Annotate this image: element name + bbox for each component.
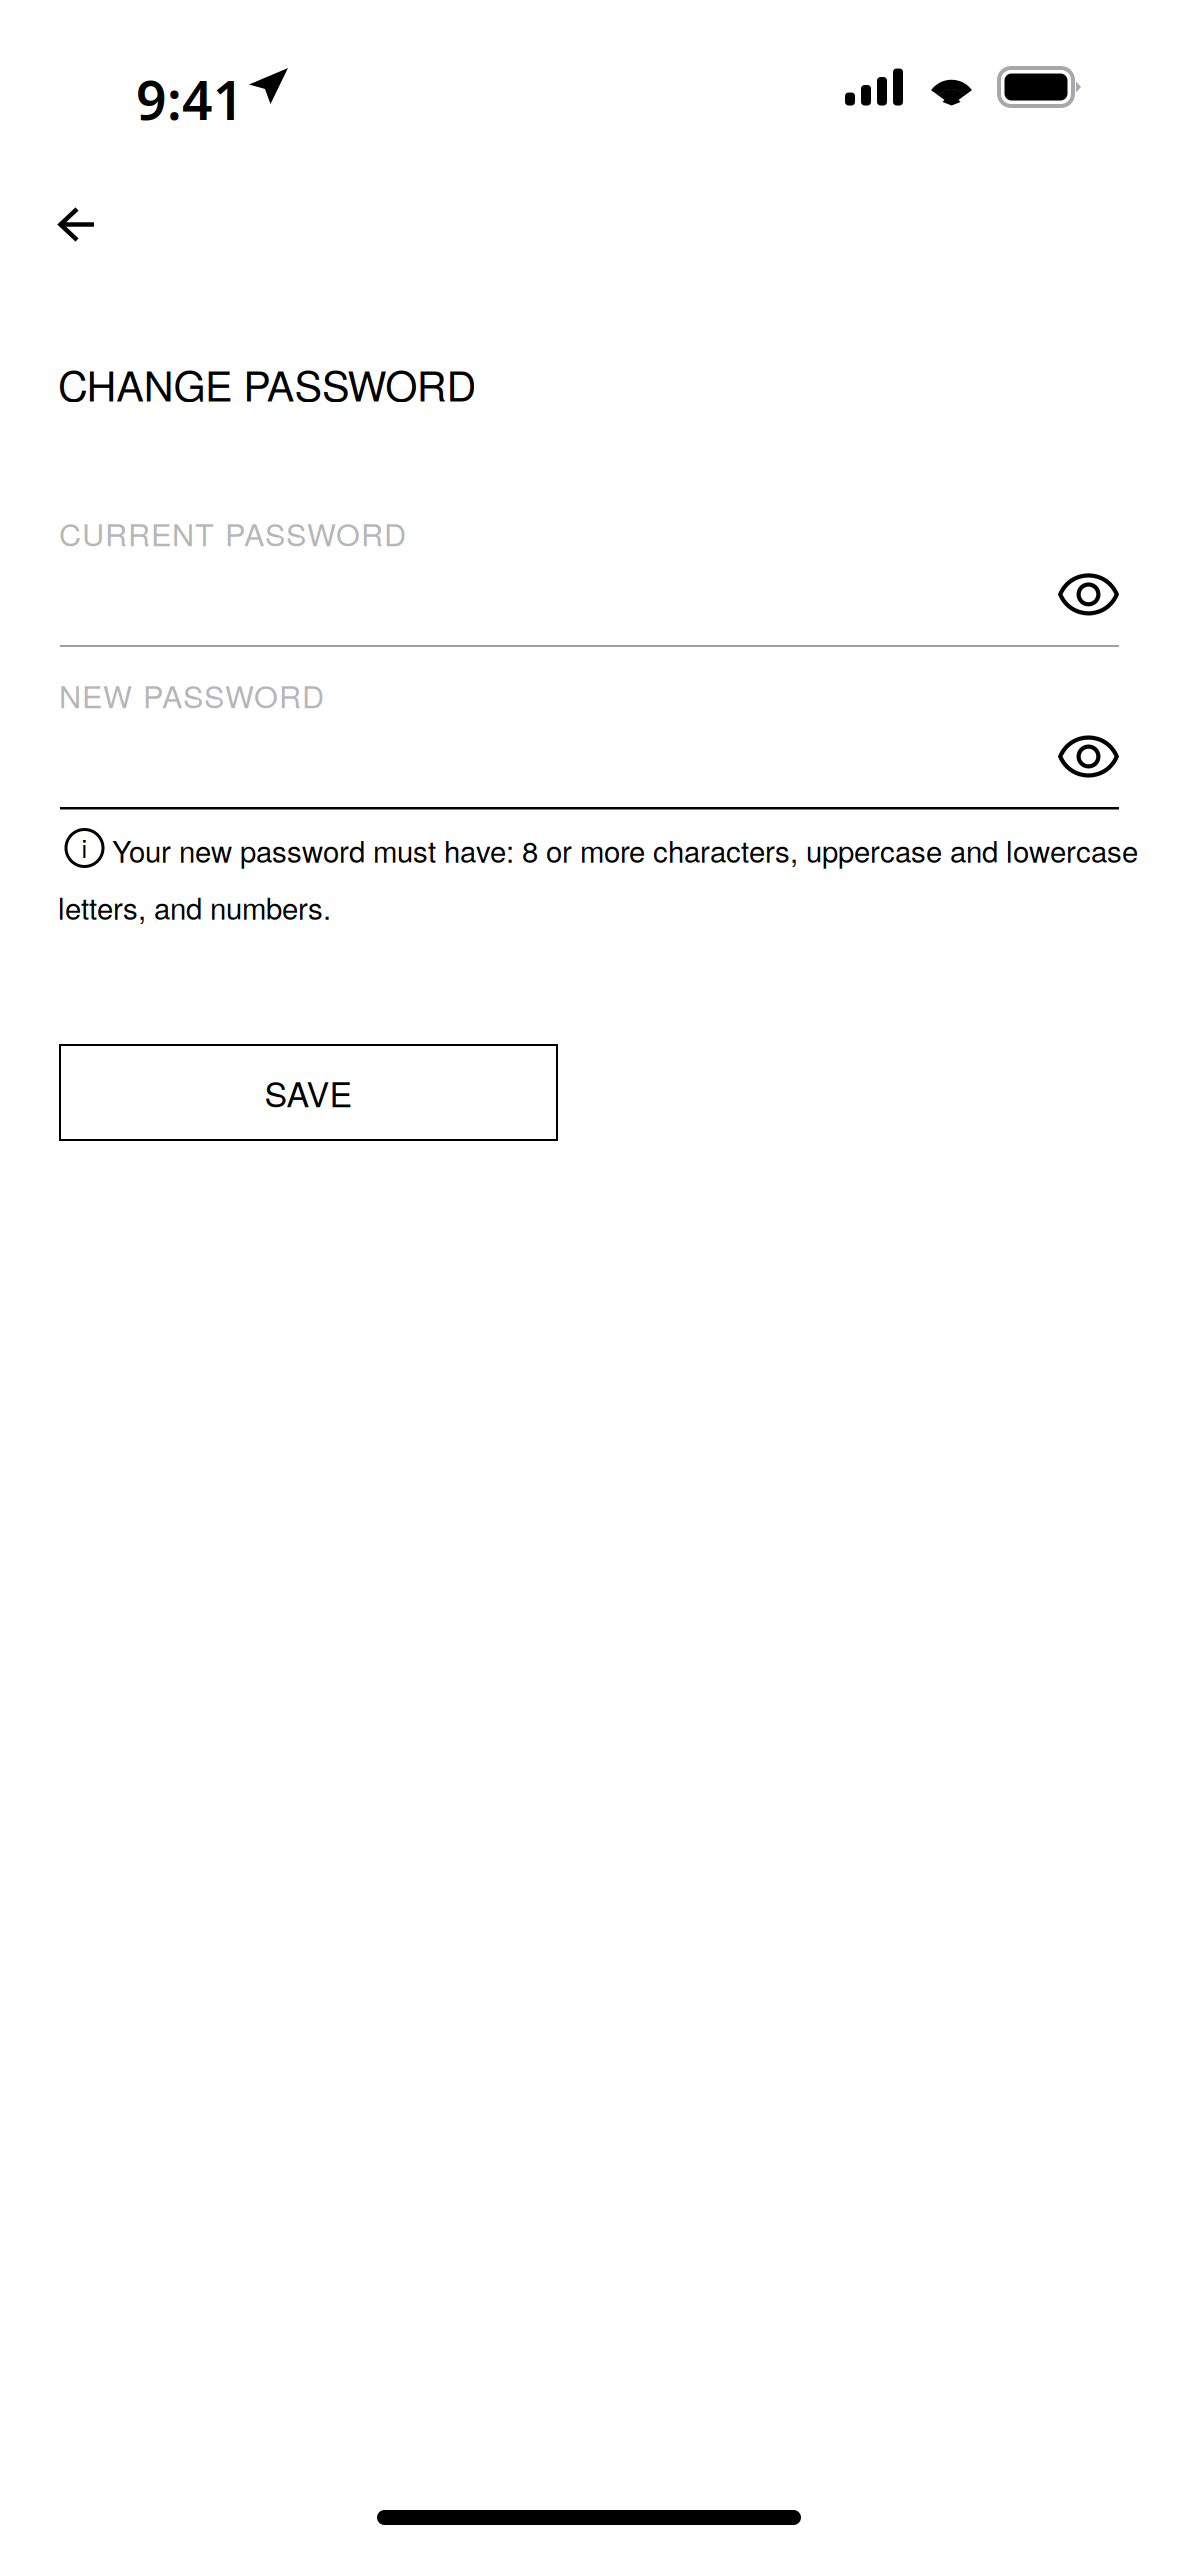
staticText: 9:41 (136, 64, 244, 135)
button[interactable]: Show new password (899, 725, 1119, 787)
staticText: Your new password must have: 8 or more c… (58, 829, 1138, 928)
button[interactable]: Show current password (899, 563, 1119, 625)
button[interactable]: SAVE (60, 1045, 557, 1140)
button[interactable]: Back (58, 175, 168, 275)
staticText: SAVE (264, 1068, 352, 1117)
staticText: CHANGE PASSWORD (58, 354, 476, 413)
staticText: i (81, 829, 87, 865)
staticText: NEW PASSWORD (59, 673, 324, 717)
staticText: CURRENT PASSWORD (59, 511, 406, 555)
